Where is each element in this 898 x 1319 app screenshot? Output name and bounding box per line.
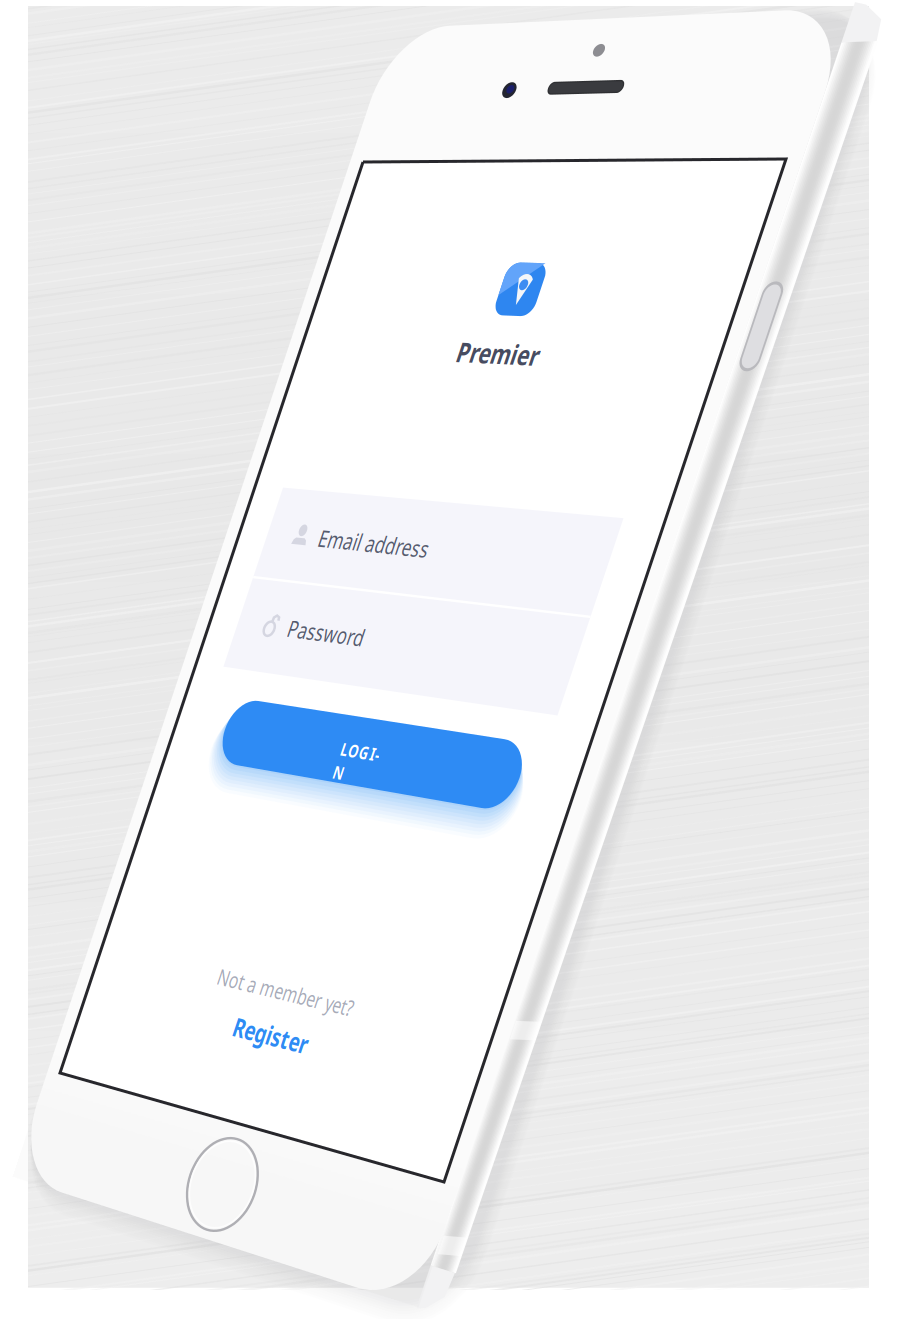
- button[interactable]: Email address: [0, 0, 898, 1319]
- staticText: Register: [152, 593, 224, 616]
- button[interactable]: Sleep: [0, 0, 898, 1319]
- button[interactable]: Home: [0, 0, 898, 1319]
- button[interactable]: Login: [0, 0, 898, 1319]
- staticText: Not a member yet?: [123, 565, 253, 585]
- button[interactable]: Register: [0, 0, 898, 1319]
- button[interactable]: Password: [0, 0, 898, 1319]
